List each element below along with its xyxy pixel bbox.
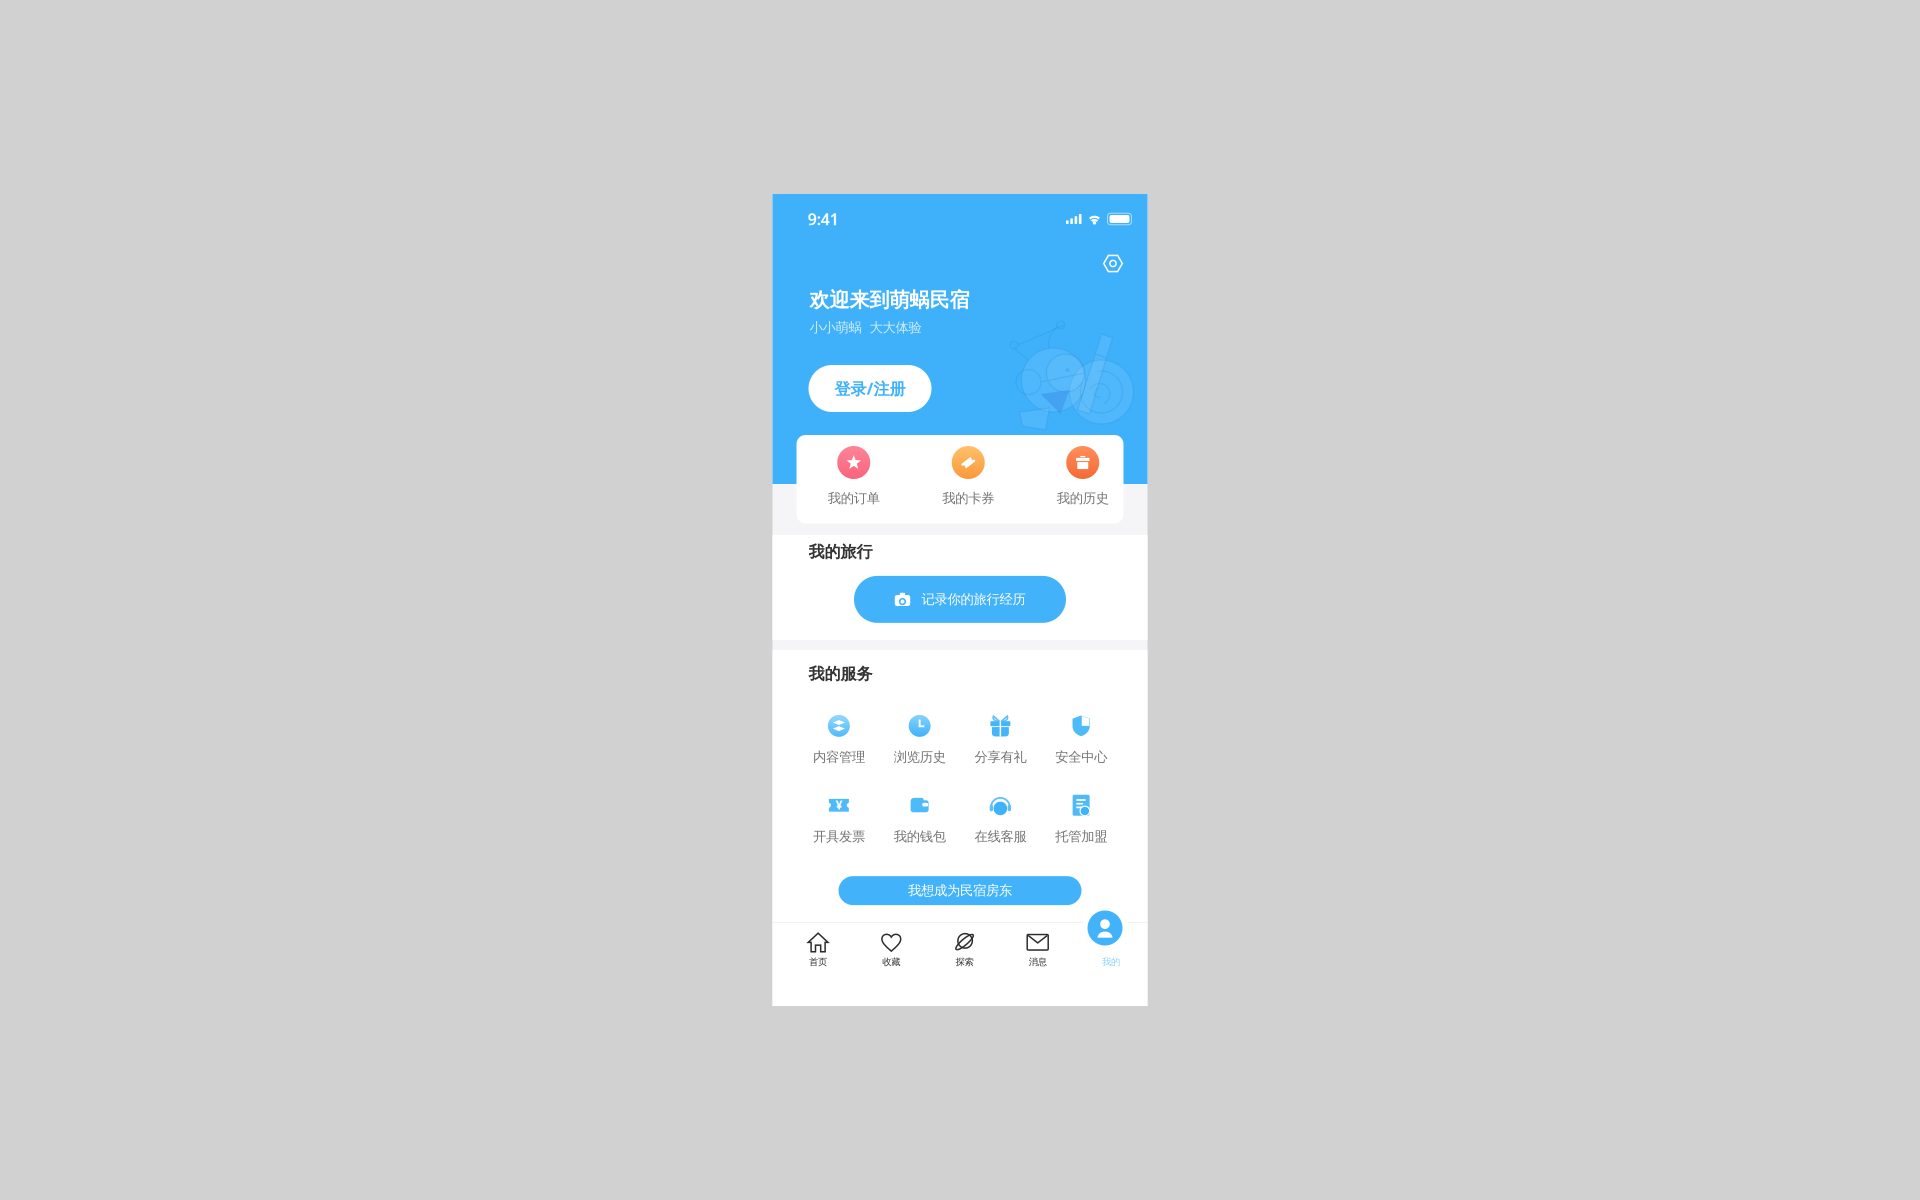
staticText: 探索: [955, 956, 973, 968]
staticText: 内容管理: [813, 749, 865, 765]
button[interactable]: 内容管理: [798, 715, 879, 765]
button[interactable]: 消息: [1001, 920, 1074, 1008]
button[interactable]: 记录你的旅行经历: [854, 576, 1066, 623]
staticText: 在线客服: [974, 828, 1026, 845]
staticText: 欢迎来到萌蜗民宿: [809, 288, 969, 312]
button[interactable]: 在线客服: [960, 794, 1041, 845]
staticText: 托管加盟: [1055, 828, 1107, 845]
staticText: 首页: [809, 956, 827, 968]
staticText: 登录/注册: [834, 378, 905, 399]
button[interactable]: 收藏: [855, 920, 928, 1008]
staticText: 我的旅行: [808, 542, 872, 562]
button[interactable]: ¥: [798, 794, 879, 845]
staticText: 我的服务: [808, 664, 872, 684]
staticText: 我的: [1102, 956, 1120, 968]
button[interactable]: 我的: [1082, 905, 1127, 950]
staticText: 收藏: [882, 956, 900, 968]
button[interactable]: 我想成为民宿房东: [838, 876, 1081, 905]
button[interactable]: 浏览历史: [879, 715, 960, 765]
button[interactable]: 托管加盟: [1041, 794, 1122, 845]
staticText: 安全中心: [1055, 749, 1107, 765]
staticText: 我的钱包: [894, 828, 946, 845]
staticText: 我的历史: [1057, 490, 1109, 506]
button[interactable]: 我的: [1074, 920, 1147, 1008]
staticText: 记录你的旅行经历: [921, 591, 1025, 608]
button[interactable]: 分享有礼: [960, 715, 1041, 765]
staticText: 我的订单: [828, 490, 880, 506]
staticText: 我想成为民宿房东: [908, 882, 1012, 899]
staticText: 我的卡券: [942, 490, 994, 506]
button[interactable]: 我的订单: [796, 446, 911, 506]
button[interactable]: 我的卡券: [911, 446, 1025, 506]
button[interactable]: 安全中心: [1041, 715, 1122, 765]
button[interactable]: 我的钱包: [879, 794, 960, 845]
staticText: 9:41: [807, 208, 838, 230]
button[interactable]: 首页: [781, 920, 855, 1008]
button[interactable]: 探索: [928, 920, 1001, 1008]
staticText: 开具发票: [813, 828, 865, 845]
staticText: 消息: [1029, 956, 1047, 968]
staticText: ¥: [835, 797, 842, 813]
staticText: 浏览历史: [894, 749, 946, 765]
staticText: 小小萌蜗 大大体验: [809, 319, 921, 336]
button[interactable]: 我的历史: [1025, 446, 1140, 506]
staticText: 分享有礼: [974, 749, 1026, 765]
button[interactable]: 设置: [1102, 253, 1123, 274]
button[interactable]: 登录/注册: [808, 365, 931, 412]
